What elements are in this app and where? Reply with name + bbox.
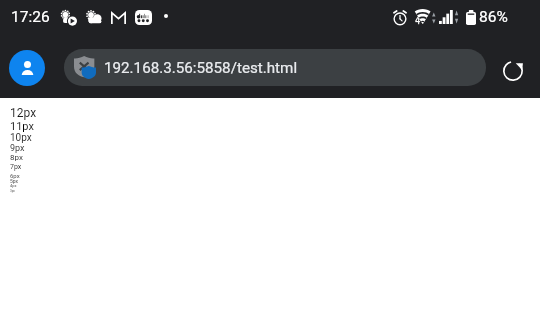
staticText: 10px	[10, 132, 32, 144]
staticText: 3px	[10, 189, 15, 193]
button[interactable]: 192.168.3.56:5858/test.html	[64, 49, 486, 86]
staticText: 17:26	[11, 8, 50, 26]
staticText: 12px	[10, 106, 37, 120]
staticText: 4px	[10, 183, 17, 188]
staticText: 9px	[10, 143, 25, 154]
button[interactable]: Account	[9, 50, 45, 86]
staticText: 8px	[10, 153, 23, 162]
staticText: 192.168.3.56:5858/test.html	[104, 59, 298, 77]
staticText: 86%	[479, 8, 508, 26]
staticText: 11px	[10, 120, 34, 133]
staticText: 7px	[10, 163, 22, 171]
button[interactable]: Reload	[497, 55, 529, 87]
staticText: 5px	[10, 178, 19, 184]
staticText: 6px	[10, 172, 20, 179]
